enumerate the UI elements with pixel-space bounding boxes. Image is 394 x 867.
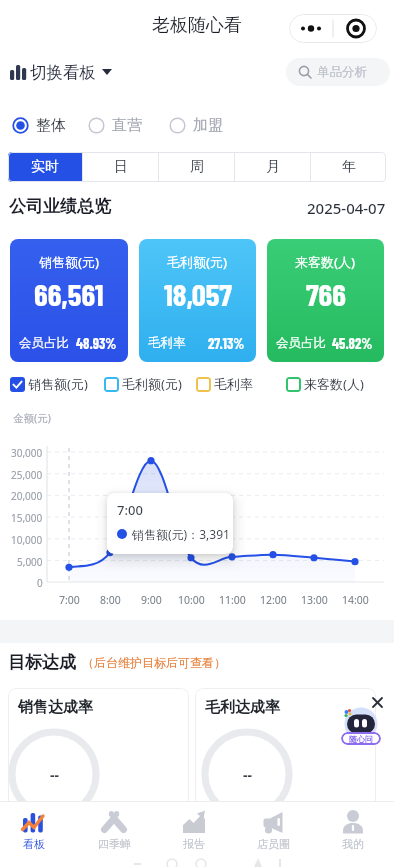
staticText: 15,000: [11, 511, 43, 523]
staticText: 月: [266, 158, 280, 176]
button[interactable]: 周: [159, 152, 234, 182]
button[interactable]: 切换看板: [9, 58, 113, 86]
button[interactable]: 月: [235, 152, 310, 182]
staticText: 2025-04-07: [307, 198, 386, 218]
button[interactable]: 四季蝉: [75, 802, 153, 858]
staticText: 毛利额(元): [167, 253, 228, 271]
staticText: 48.93%: [76, 334, 117, 351]
button[interactable]: 我的: [314, 802, 392, 858]
button[interactable]: 毛利额(元): [139, 239, 256, 362]
staticText: 7:00: [117, 501, 143, 519]
staticText: 销售额(元): [39, 253, 100, 271]
staticText: 公司业绩总览: [9, 196, 111, 217]
staticText: 来客数(人): [304, 375, 364, 393]
button[interactable]: 看板: [0, 802, 73, 858]
staticText: 0: [37, 576, 43, 588]
staticText: 66,561: [34, 275, 104, 312]
staticText: 销售达成率: [18, 698, 93, 717]
staticText: 10,000: [11, 533, 43, 545]
staticText: 日: [114, 158, 128, 176]
staticText: 9:00: [141, 593, 162, 607]
staticText: 766: [306, 275, 346, 312]
staticText: 店员圈: [257, 837, 290, 851]
staticText: 报告: [183, 837, 205, 851]
button[interactable]: 销售额(元): [10, 239, 128, 362]
button[interactable]: 来客数(人): [286, 375, 364, 393]
button[interactable]: 销售额(元): [10, 375, 88, 393]
staticText: 18,057: [164, 275, 232, 312]
staticText: 整体: [36, 116, 66, 135]
staticText: 随心问: [349, 734, 373, 744]
staticText: 5,000: [17, 555, 43, 567]
button[interactable]: 毛利达成率: [195, 688, 376, 814]
staticText: 金额(元): [13, 411, 51, 425]
staticText: 27.13%: [208, 334, 245, 351]
button[interactable]: 单品分析: [286, 58, 390, 86]
staticText: 25,000: [11, 468, 43, 480]
staticText: 看板: [23, 837, 45, 851]
staticText: （后台维护目标后可查看）: [82, 655, 226, 670]
button[interactable]: 毛利额(元): [104, 375, 182, 393]
staticText: 30,000: [11, 446, 43, 458]
staticText: 12:00: [260, 593, 287, 607]
staticText: 切换看板: [30, 62, 96, 83]
staticText: 销售额(元): [28, 375, 88, 393]
staticText: 目标达成: [8, 652, 76, 673]
button[interactable]: 随心问: [339, 706, 383, 748]
staticText: --: [50, 765, 59, 783]
staticText: 13:00: [301, 593, 328, 607]
staticText: 四季蝉: [98, 837, 131, 851]
staticText: 周: [190, 158, 204, 176]
staticText: 毛利达成率: [205, 698, 280, 717]
button[interactable]: 实时: [8, 152, 82, 182]
staticText: 来客数(人): [295, 253, 356, 271]
staticText: 会员占比: [276, 335, 326, 351]
button[interactable]: 店员圈: [234, 802, 312, 858]
staticText: 毛利率: [148, 335, 186, 351]
button[interactable]: 毛利率: [196, 375, 253, 393]
staticText: 会员占比: [19, 335, 69, 351]
staticText: 11:00: [219, 593, 246, 607]
staticText: 年: [342, 158, 356, 176]
staticText: 14:00: [342, 593, 369, 607]
staticText: 8:00: [100, 593, 121, 607]
staticText: 加盟: [193, 116, 223, 135]
button[interactable]: 报告: [155, 802, 233, 858]
staticText: 45.82%: [332, 334, 373, 351]
staticText: 实时: [31, 158, 59, 176]
staticText: 我的: [342, 837, 364, 851]
button[interactable]: 整体: [12, 115, 66, 135]
staticText: 10:00: [178, 593, 205, 607]
staticText: 单品分析: [317, 64, 367, 80]
staticText: 毛利率: [214, 376, 253, 392]
button[interactable]: 年: [311, 152, 386, 182]
button[interactable]: 直营: [88, 115, 142, 135]
staticText: 7:00: [59, 593, 80, 607]
button[interactable]: 销售达成率: [8, 688, 189, 814]
staticText: 老板随心看: [152, 14, 242, 37]
button[interactable]: [372, 697, 383, 708]
staticText: 20,000: [11, 489, 43, 501]
button[interactable]: 加盟: [169, 115, 223, 135]
button[interactable]: [289, 14, 377, 43]
staticText: 销售额(元)：3,391: [132, 526, 230, 542]
staticText: 直营: [112, 116, 142, 135]
button[interactable]: 日: [83, 152, 158, 182]
staticText: --: [243, 765, 252, 783]
staticText: 毛利额(元): [122, 375, 182, 393]
button[interactable]: 来客数(人): [267, 239, 384, 362]
